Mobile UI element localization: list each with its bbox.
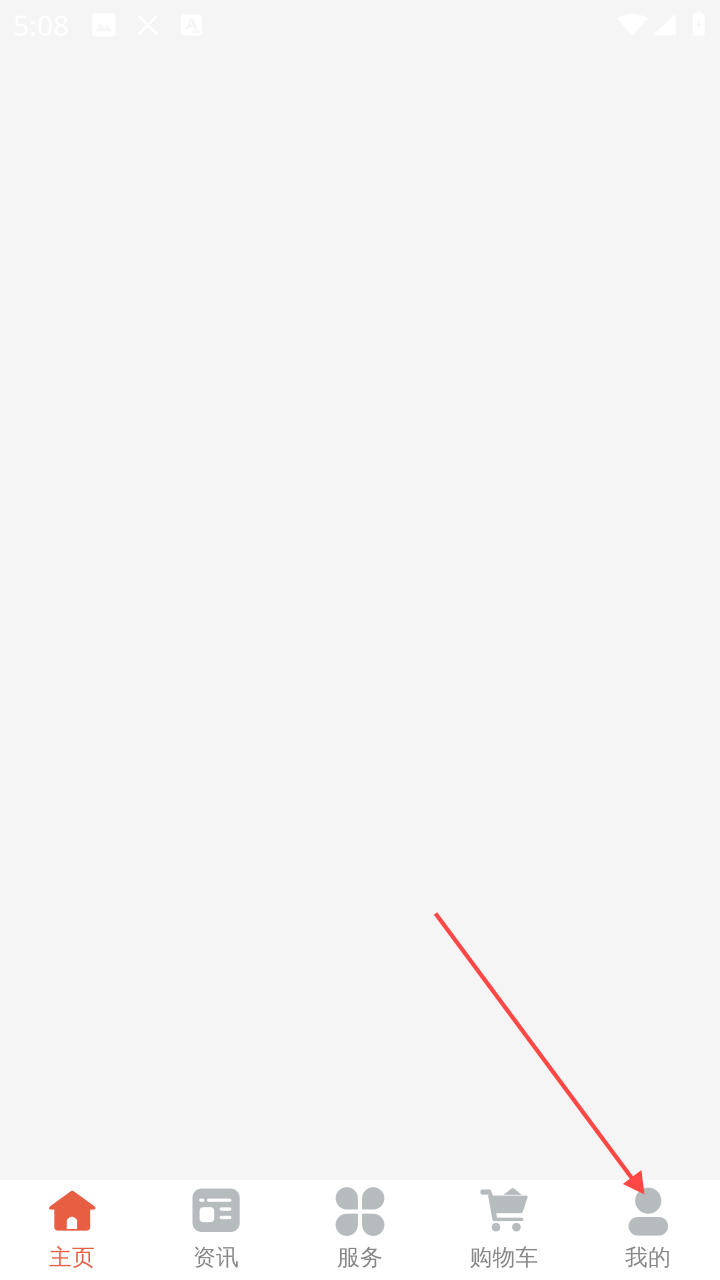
staticText: 5:08: [13, 6, 69, 44]
button[interactable]: 服务: [288, 1180, 432, 1280]
staticText: 购物车: [469, 1244, 538, 1271]
staticText: 主页: [49, 1244, 95, 1271]
staticText: 我的: [625, 1244, 671, 1271]
button[interactable]: 资讯: [144, 1180, 288, 1280]
staticText: 服务: [337, 1244, 383, 1271]
button[interactable]: 购物车: [432, 1180, 576, 1280]
button[interactable]: 主页: [0, 1180, 144, 1280]
staticText: 资讯: [193, 1244, 239, 1271]
button[interactable]: 我的: [576, 1180, 720, 1280]
